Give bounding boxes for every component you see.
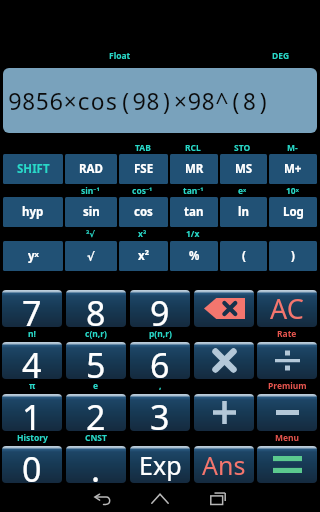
button[interactable]: %	[170, 241, 218, 271]
staticText: cos	[134, 204, 153, 220]
button[interactable]: 9856×cos(98)×98^(8)	[3, 68, 317, 133]
staticText: 2	[86, 394, 106, 431]
staticText: M-	[287, 142, 298, 154]
button[interactable]: Multiply	[194, 342, 254, 379]
button[interactable]: Back	[73, 485, 131, 512]
button[interactable]: x²	[119, 241, 168, 271]
button[interactable]: tan	[170, 197, 218, 227]
staticText: √	[87, 250, 95, 263]
staticText: 4	[22, 342, 42, 379]
button[interactable]: 8	[66, 290, 126, 327]
staticText: Ans	[202, 448, 246, 482]
staticText: 8	[86, 290, 106, 327]
staticText: 9	[150, 290, 170, 327]
staticText: tan	[184, 204, 204, 220]
button[interactable]: 4	[2, 342, 62, 379]
staticText: FSE	[134, 161, 154, 177]
staticText: hyp	[22, 204, 44, 220]
button[interactable]: 5	[66, 342, 126, 379]
button[interactable]: FSE	[119, 154, 168, 184]
button[interactable]: MR	[170, 154, 218, 184]
staticText: ³√	[86, 228, 95, 240]
staticText: p(n,r)	[149, 328, 172, 340]
staticText: History	[17, 432, 48, 444]
staticText: ,	[159, 380, 162, 392]
staticText: CNST	[85, 432, 107, 444]
staticText: π	[29, 380, 36, 392]
staticText: AC	[270, 290, 304, 327]
button[interactable]: 6	[130, 342, 190, 379]
staticText: e	[93, 380, 99, 392]
staticText: ln	[238, 204, 249, 220]
staticText: sin	[83, 204, 100, 220]
staticText: RAD	[79, 161, 103, 177]
staticText: SHIFT	[17, 161, 50, 177]
button[interactable]: Recent apps	[189, 485, 247, 512]
button[interactable]: 2	[66, 394, 126, 431]
button[interactable]: Plus	[194, 394, 254, 431]
staticText: M+	[284, 161, 302, 177]
button[interactable]: 7	[2, 290, 62, 327]
button[interactable]: M+	[269, 154, 317, 184]
button[interactable]: Backspace	[194, 290, 254, 327]
button[interactable]: 3	[130, 394, 190, 431]
button[interactable]: (	[220, 241, 267, 271]
button[interactable]: )	[269, 241, 317, 271]
staticText: eˣ	[238, 185, 247, 197]
staticText: 0	[22, 446, 42, 483]
button[interactable]: Divide	[257, 342, 317, 379]
staticText: n!	[28, 328, 36, 340]
button[interactable]: Home	[131, 485, 189, 512]
staticText: %	[189, 248, 200, 264]
button[interactable]: RAD	[65, 154, 117, 184]
button[interactable]: .	[66, 446, 126, 483]
staticText: x²	[138, 248, 150, 264]
staticText: DEG	[272, 50, 290, 62]
staticText: 10ˣ	[286, 185, 299, 197]
staticText: 3	[150, 394, 170, 431]
staticText: .	[91, 446, 101, 483]
button[interactable]: cos	[119, 197, 168, 227]
button[interactable]: 0	[2, 446, 62, 483]
button[interactable]: Log	[269, 197, 317, 227]
button[interactable]: 1	[2, 394, 62, 431]
button[interactable]: sin	[65, 197, 117, 227]
staticText: Premium	[268, 380, 307, 392]
button[interactable]: All clear	[257, 290, 317, 327]
staticText: 1	[22, 394, 42, 431]
staticText: MR	[185, 161, 204, 177]
button[interactable]: SHIFT	[3, 154, 63, 184]
staticText: Exp	[139, 448, 182, 482]
button[interactable]: 9	[130, 290, 190, 327]
staticText: yˣ	[28, 248, 39, 264]
staticText: 9856×cos(98)×98^(8)	[8, 85, 271, 116]
staticText: Rate	[277, 328, 297, 340]
button[interactable]: Minus	[257, 394, 317, 431]
staticText: 7	[22, 290, 42, 327]
staticText: (	[242, 248, 246, 264]
staticText: cos⁻¹	[132, 185, 153, 197]
staticText: tan⁻¹	[183, 185, 204, 197]
staticText: sin⁻¹	[81, 185, 100, 197]
staticText: MS	[235, 161, 253, 177]
staticText: Menu	[275, 432, 300, 444]
staticText: )	[291, 248, 295, 264]
button[interactable]: √	[65, 241, 117, 271]
staticText: TAB	[135, 142, 151, 154]
staticText: x³	[138, 228, 147, 240]
button[interactable]: Answer	[194, 446, 254, 483]
staticText: c(n,r)	[85, 328, 107, 340]
staticText: Float	[109, 50, 131, 62]
staticText: 5	[86, 342, 106, 379]
button[interactable]: Equals	[257, 446, 317, 483]
staticText: RCL	[185, 142, 201, 154]
button[interactable]: yˣ	[3, 241, 63, 271]
button[interactable]: Exponent	[130, 446, 190, 483]
button[interactable]: MS	[220, 154, 267, 184]
button[interactable]: hyp	[3, 197, 63, 227]
staticText: STO	[234, 142, 251, 154]
staticText: Log	[283, 204, 304, 220]
staticText: 1/x	[186, 228, 200, 240]
staticText: 6	[150, 342, 170, 379]
button[interactable]: ln	[220, 197, 267, 227]
